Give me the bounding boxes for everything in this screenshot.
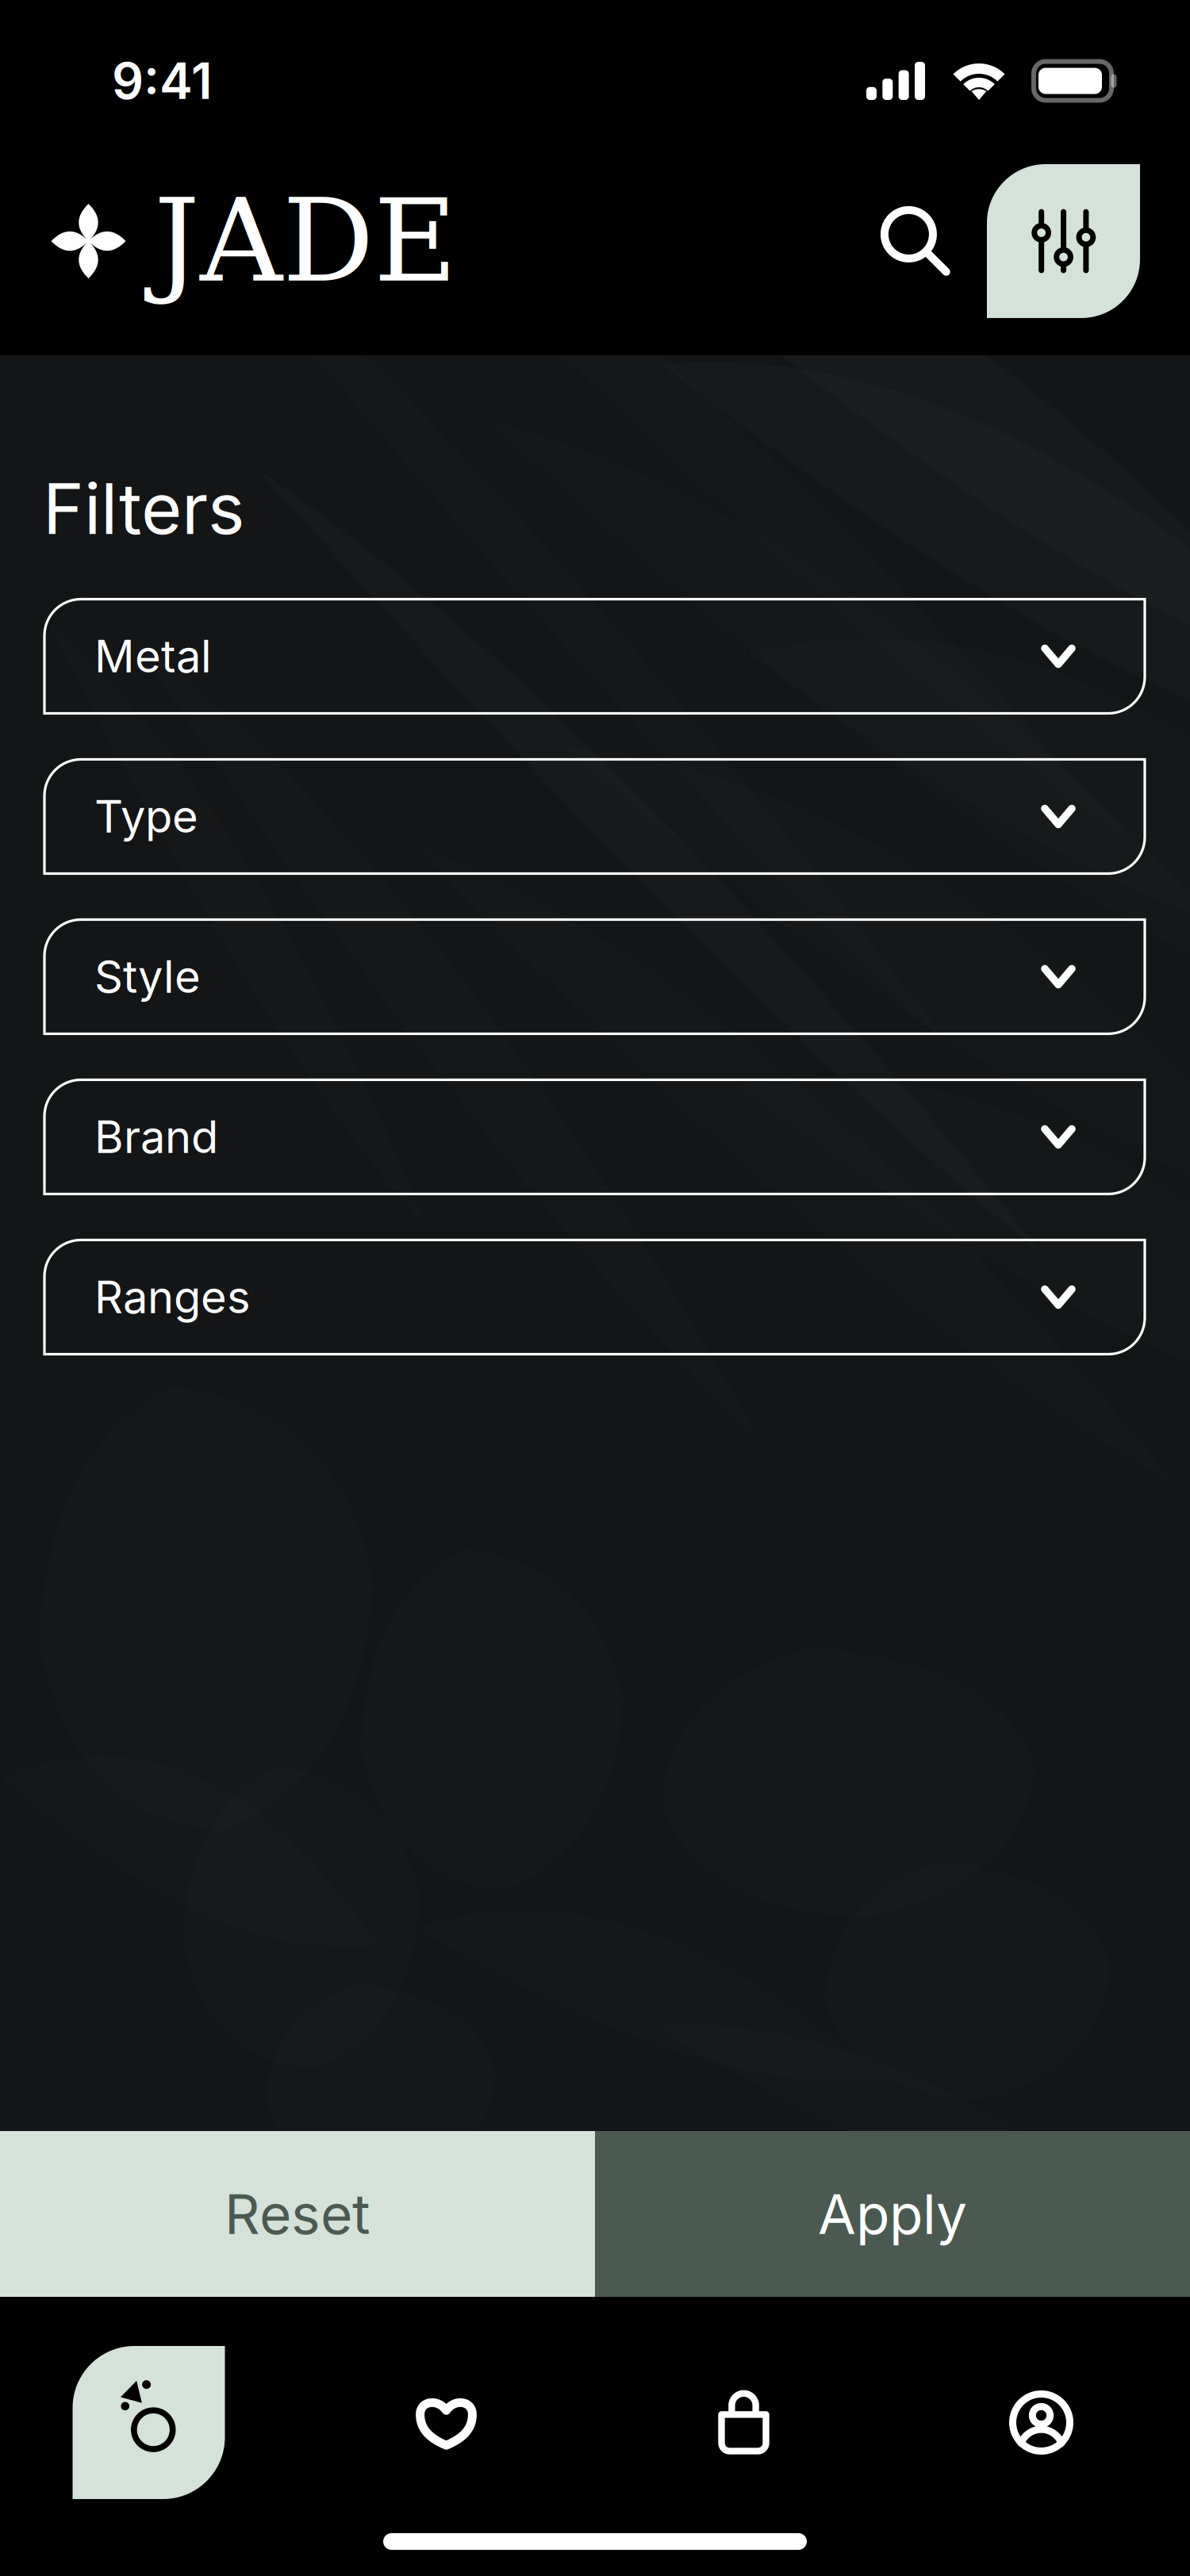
staticText: 9:41	[112, 51, 212, 111]
staticText: Metal	[94, 629, 212, 683]
staticText: Reset	[225, 2181, 370, 2247]
button[interactable]: Brand	[44, 1080, 1145, 1194]
button[interactable]: Reset	[0, 2131, 595, 2297]
button[interactable]: Type	[44, 759, 1145, 874]
button[interactable]: Apply	[595, 2131, 1190, 2297]
button[interactable]: Style	[44, 920, 1145, 1034]
staticText: Type	[94, 790, 198, 843]
staticText: Filters	[43, 466, 244, 551]
button[interactable]: Search	[858, 185, 987, 297]
button[interactable]: Shop	[0, 2346, 297, 2499]
staticText: Apply	[818, 2181, 967, 2247]
staticText: Style	[94, 950, 201, 1004]
button[interactable]: Filter options	[987, 164, 1140, 318]
button[interactable]: Bag	[595, 2346, 892, 2499]
button[interactable]: Metal	[44, 599, 1145, 713]
staticText: JADE	[154, 175, 457, 308]
button[interactable]: Ranges	[44, 1240, 1145, 1354]
staticText: Brand	[94, 1110, 218, 1164]
button[interactable]: Account	[892, 2346, 1190, 2499]
button[interactable]: Favourites	[297, 2346, 595, 2499]
staticText: Ranges	[94, 1270, 251, 1324]
